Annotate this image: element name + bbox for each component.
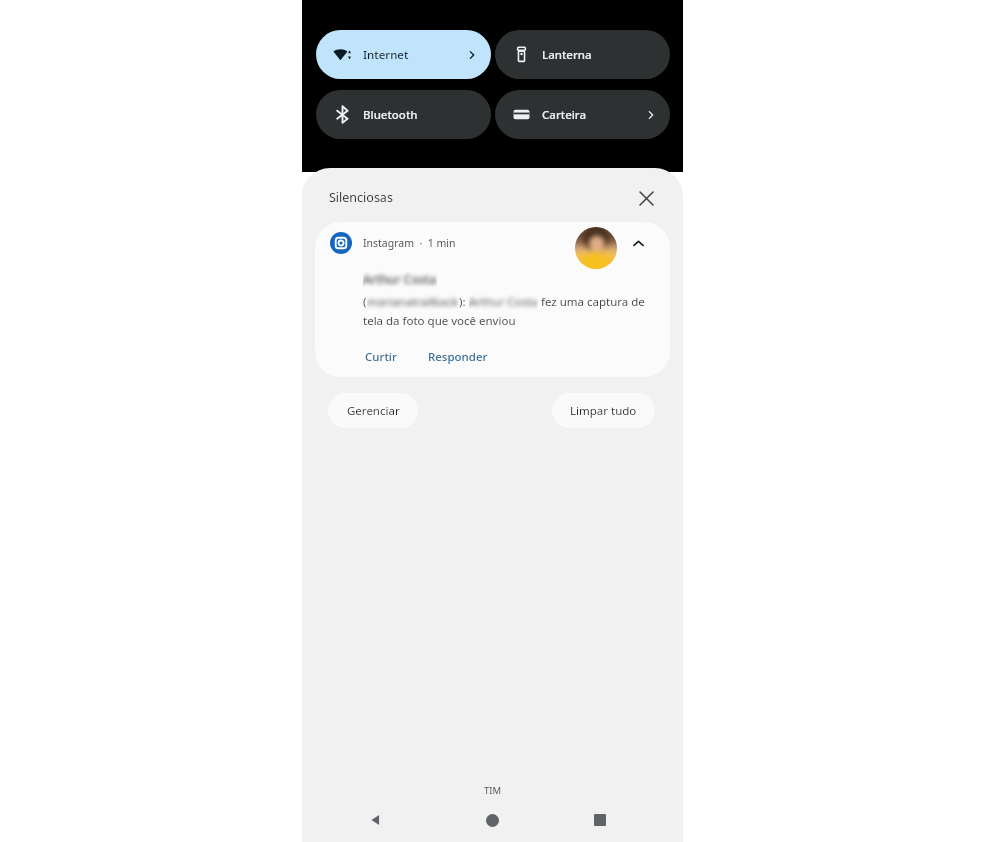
staticText: Curtir	[365, 349, 397, 365]
staticText: tela da foto que você enviou	[363, 313, 516, 329]
staticText: Instagram · 1 min	[363, 236, 456, 250]
staticText: ):	[459, 294, 469, 310]
button[interactable]: Limpar tudo	[552, 393, 655, 428]
button[interactable]: Instagram · 1 min	[315, 222, 670, 377]
button[interactable]: Bluetooth	[316, 90, 491, 139]
button[interactable]: Voltar	[359, 803, 393, 837]
staticText: Arthur Costa	[363, 271, 437, 287]
button[interactable]: Recentes	[583, 803, 617, 837]
staticText: Arthur Costa	[469, 294, 538, 310]
button[interactable]: Responder	[426, 346, 490, 368]
button[interactable]: Lanterna	[495, 30, 670, 79]
button[interactable]: Carteira	[495, 90, 670, 139]
staticText: Lanterna	[542, 47, 592, 63]
staticText: Responder	[428, 349, 488, 365]
staticText: TIM	[302, 784, 683, 797]
button[interactable]: Gerenciar	[328, 393, 418, 428]
staticText: Silenciosas	[329, 189, 393, 206]
staticText: fez uma captura de	[538, 294, 645, 310]
button[interactable]: Fechar	[630, 182, 662, 214]
button[interactable]: Curtir	[363, 346, 399, 368]
staticText: marianatrailback	[367, 294, 459, 310]
staticText: Bluetooth	[363, 107, 418, 123]
staticText: Carteira	[542, 107, 587, 123]
staticText: Internet	[363, 47, 409, 63]
staticText: (	[363, 294, 367, 310]
staticText: Gerenciar	[347, 403, 400, 419]
button[interactable]: Recolher	[625, 230, 651, 256]
staticText: Limpar tudo	[570, 403, 637, 419]
button[interactable]: Internet	[316, 30, 491, 79]
button[interactable]: Início	[475, 803, 509, 837]
